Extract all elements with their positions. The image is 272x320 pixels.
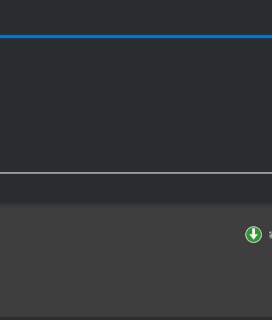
button[interactable]: Download	[243, 224, 265, 246]
